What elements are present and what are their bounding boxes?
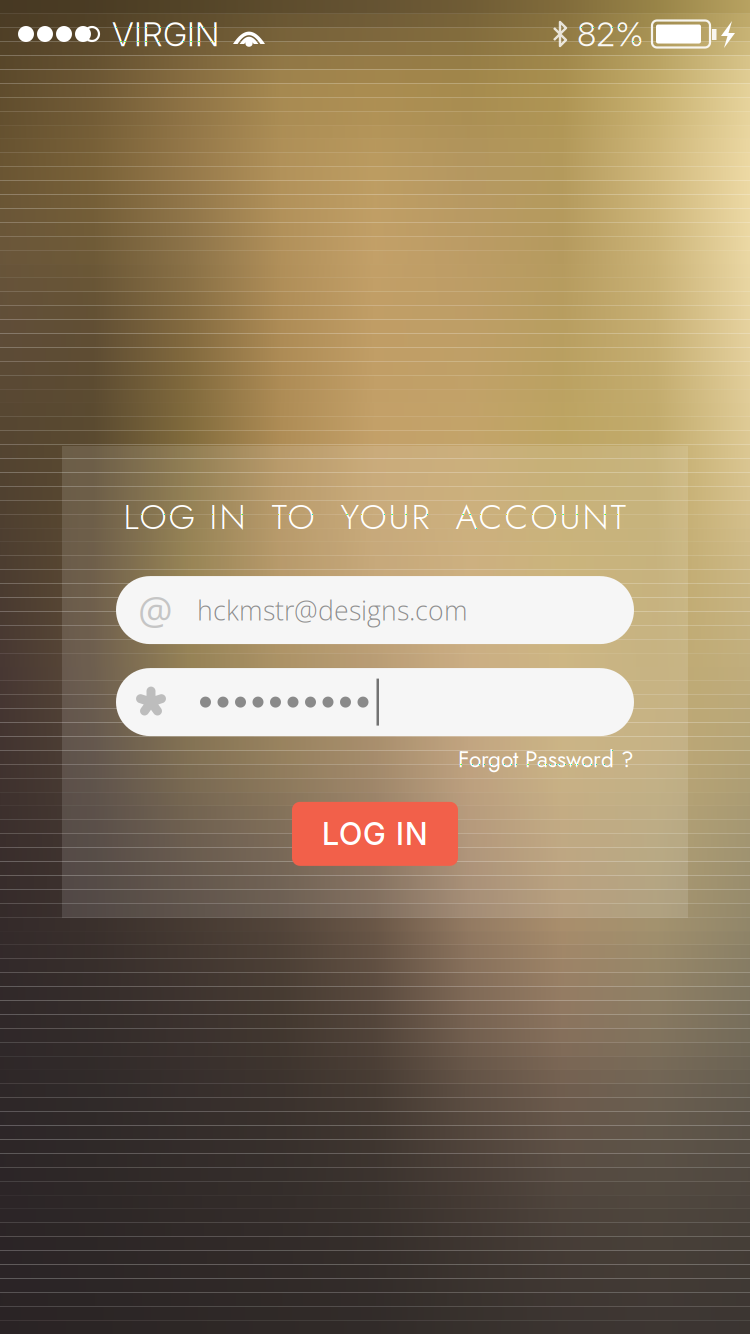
staticText: LOG IN [322, 815, 428, 852]
staticText: 82% [577, 14, 644, 54]
button[interactable] [116, 668, 634, 736]
button[interactable]: Forgot Password ? [458, 743, 634, 776]
button[interactable]: @ [116, 576, 634, 644]
button[interactable]: LOG IN [292, 802, 458, 866]
staticText: @ [138, 584, 173, 636]
staticText: hckmstr@designs.com [197, 592, 468, 628]
staticText: LOG IN TO YOUR ACCOUNT [123, 492, 626, 542]
staticText: Forgot Password ? [458, 743, 634, 776]
staticText: VIRGIN [112, 14, 219, 54]
